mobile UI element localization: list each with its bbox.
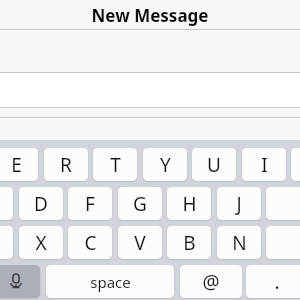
staticText: C [84, 230, 97, 256]
button[interactable]: H [167, 187, 211, 220]
button[interactable]: V [118, 226, 162, 259]
staticText: E [11, 152, 22, 178]
staticText: D [34, 191, 48, 217]
button[interactable]: B [167, 226, 211, 259]
staticText: . [274, 269, 280, 295]
button[interactable]: D [19, 187, 63, 220]
staticText: New Message [0, 4, 300, 28]
button[interactable]: C [68, 226, 112, 259]
button[interactable]: X [19, 226, 63, 259]
button[interactable]: T [93, 148, 137, 181]
staticText: B [183, 230, 196, 256]
button[interactable] [266, 187, 300, 220]
staticText: V [134, 230, 146, 256]
button[interactable]: Y [143, 148, 187, 181]
staticText: T [110, 152, 121, 178]
button[interactable]: J [217, 187, 261, 220]
staticText: I [261, 152, 268, 178]
staticText: @ [202, 269, 220, 295]
button[interactable]: . [246, 265, 300, 298]
staticText: X [35, 230, 47, 256]
button[interactable]: @ [180, 265, 242, 298]
button[interactable] [0, 226, 13, 259]
button[interactable] [291, 148, 300, 181]
button[interactable]: Dictate [0, 265, 40, 298]
button[interactable] [266, 226, 300, 259]
staticText: space [90, 272, 131, 292]
button[interactable]: E [0, 148, 38, 181]
staticText: J [236, 191, 242, 217]
staticText: Y [160, 152, 171, 178]
staticText: F [85, 191, 95, 217]
button[interactable]: F [68, 187, 112, 220]
staticText: U [207, 152, 221, 178]
staticText: R [60, 152, 72, 178]
button[interactable]: space [46, 265, 174, 298]
button[interactable] [0, 187, 13, 220]
button[interactable]: U [192, 148, 236, 181]
staticText: H [182, 191, 197, 217]
staticText: N [232, 230, 247, 256]
button[interactable]: R [44, 148, 88, 181]
button[interactable]: G [118, 187, 162, 220]
button[interactable]: N [217, 226, 261, 259]
staticText: G [133, 191, 147, 217]
button[interactable]: I [242, 148, 286, 181]
